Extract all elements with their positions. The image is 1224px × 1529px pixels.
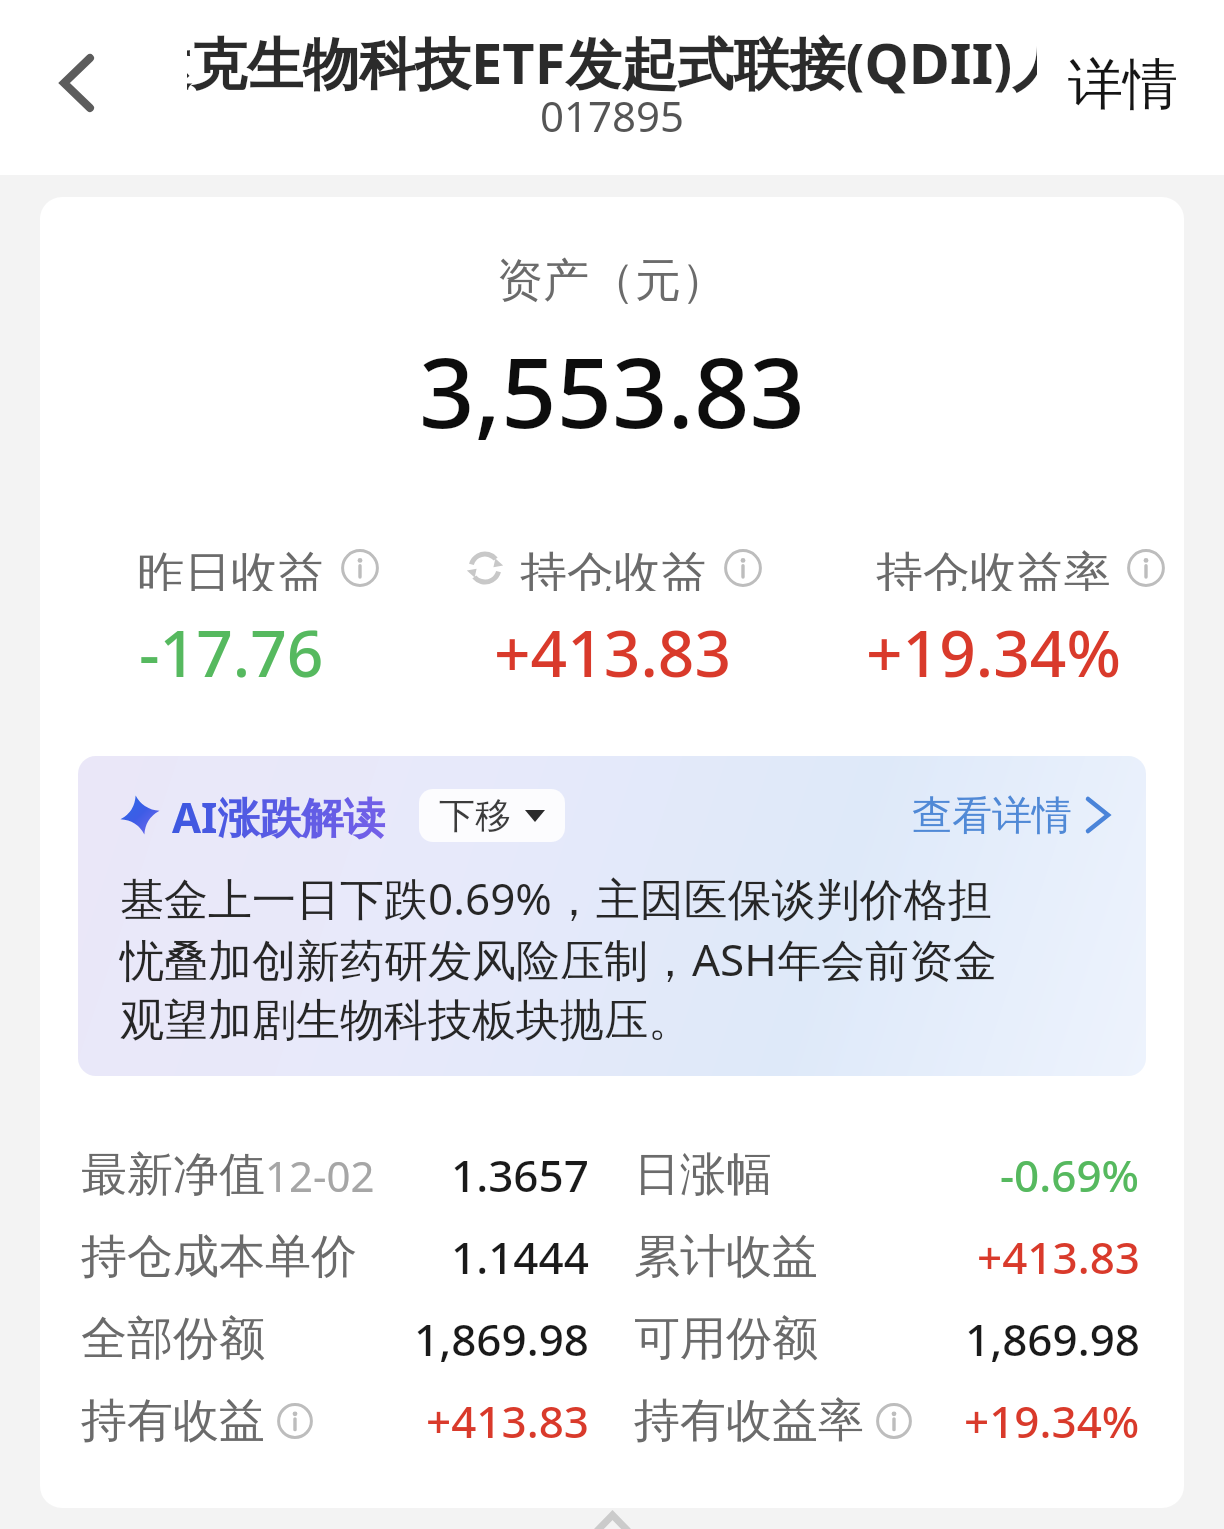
staticText: 持仓收益 [520, 545, 708, 591]
staticText: 017895 [540, 87, 685, 144]
staticText: 持仓成本单价 [81, 1228, 357, 1286]
staticText: +413.83 [977, 1227, 1140, 1287]
button[interactable]: 持仓成本单价 [81, 1227, 589, 1287]
staticText: 达克生物科技ETF发起式联接(QDII)人民 [187, 24, 1037, 100]
staticText: 可用份额 [634, 1310, 818, 1368]
staticText: 日涨幅 [634, 1146, 772, 1204]
button[interactable]: 最新净值 [81, 1145, 589, 1205]
staticText: 持有收益率 [634, 1392, 864, 1450]
staticText: 下移 [439, 793, 511, 838]
staticText: 1,869.98 [965, 1309, 1140, 1369]
button[interactable]: 累计收益 [634, 1227, 1140, 1287]
button[interactable]: 持仓收益 [422, 545, 803, 696]
button[interactable]: 持有收益率 [634, 1391, 1140, 1451]
staticText: 详情 [1068, 50, 1178, 119]
button[interactable]: 查看详情 [912, 790, 1110, 840]
staticText: 1.1444 [451, 1227, 589, 1287]
staticText: 3,553.83 [40, 324, 1184, 456]
staticText: +413.83 [494, 609, 732, 696]
button[interactable]: AI涨跌解读 [78, 756, 1146, 1076]
button[interactable]: 昨日收益 [40, 545, 422, 696]
staticText: 持仓收益率 [876, 545, 1111, 591]
button[interactable]: 日涨幅 [634, 1145, 1140, 1205]
button[interactable]: 详情 [1038, 36, 1224, 145]
staticText: 查看详情 [912, 790, 1072, 840]
staticText: 基金上一日下跌0.69%，主因医保谈判价格担 忧叠加创新药研发风险压制，ASH年… [120, 868, 1110, 1048]
staticText: +19.34% [866, 609, 1121, 696]
staticText: -0.69% [1000, 1145, 1140, 1205]
staticText: +413.83 [426, 1391, 589, 1451]
staticText: 1,869.98 [414, 1309, 589, 1369]
button[interactable]: Collapse [547, 1469, 677, 1529]
staticText: AI涨跌解读 [172, 788, 386, 842]
staticText: 资产（元） [40, 252, 1184, 310]
button[interactable]: 下移 [419, 789, 565, 842]
staticText: 最新净值 [81, 1146, 265, 1204]
staticText: 昨日收益 [137, 545, 325, 591]
staticText: -17.76 [139, 609, 324, 696]
button[interactable]: 持仓收益率 [803, 545, 1184, 696]
button[interactable]: Back [13, 23, 141, 143]
button[interactable]: 可用份额 [634, 1309, 1140, 1369]
staticText: 全部份额 [81, 1310, 265, 1368]
staticText: 持有收益 [81, 1392, 265, 1450]
staticText: +19.34% [964, 1391, 1140, 1451]
button[interactable]: 持有收益 [81, 1391, 589, 1451]
staticText: 累计收益 [634, 1228, 818, 1286]
button[interactable]: 全部份额 [81, 1309, 589, 1369]
staticText: 1.3657 [451, 1145, 589, 1205]
staticText: 12-02 [265, 1147, 375, 1204]
